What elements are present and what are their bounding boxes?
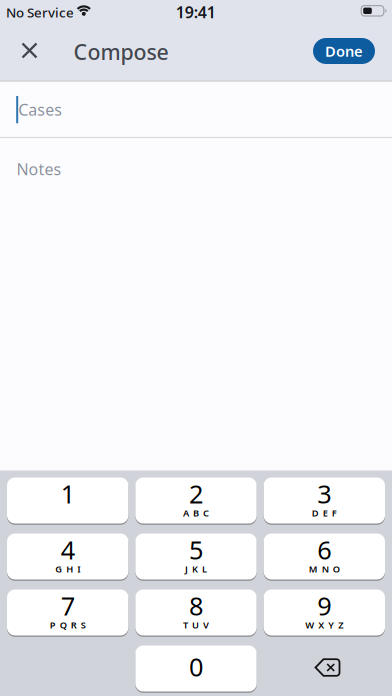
button[interactable]: 9 [264,589,385,635]
button[interactable]: 7 [7,589,128,635]
staticText: 9 [317,589,331,622]
staticText: M N O [309,563,340,575]
staticText: G H I [55,563,80,575]
staticText: 0 [189,650,203,683]
staticText: 8 [189,589,203,622]
staticText: 2 [189,477,203,510]
button[interactable]: 8 [135,589,257,635]
button[interactable] [303,644,351,690]
button[interactable]: 2 [135,477,257,523]
staticText: W X Y Z [305,619,343,631]
button[interactable]: 5 [135,533,257,579]
button[interactable]: 6 [264,533,385,579]
staticText: P Q R S [50,619,86,631]
staticText: A B C [183,507,209,519]
button[interactable]: Done [313,38,375,64]
staticText: Cases [18,99,62,120]
staticText: 1 [61,477,75,510]
button[interactable]: 3 [264,477,385,523]
staticText: No Service [6,3,74,21]
button[interactable]: Cases [0,82,392,138]
button[interactable]: 4 [7,533,128,579]
staticText: 3 [317,477,331,510]
staticText: 6 [317,533,331,566]
button[interactable] [7,28,51,72]
staticText: J K L [185,563,207,575]
staticText: Notes [16,158,61,180]
staticText: 7 [61,589,75,622]
staticText: 19:41 [176,1,216,23]
staticText: D E F [312,507,337,519]
staticText: Compose [73,37,168,66]
staticText: Done [325,41,363,61]
staticText: 5 [189,533,203,566]
button[interactable]: 1 [7,477,128,523]
button[interactable]: 0 [135,645,257,691]
button[interactable]: Notes [0,138,392,470]
staticText: 4 [61,533,75,566]
staticText: T U V [183,619,209,631]
